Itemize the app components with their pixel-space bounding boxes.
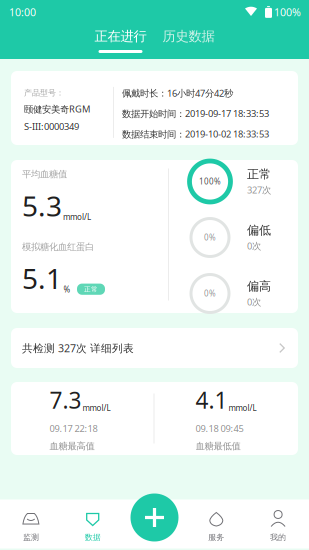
button[interactable]: 我的 xyxy=(247,499,309,548)
staticText: mmol/L xyxy=(82,402,110,413)
staticText: 10:00 xyxy=(9,5,36,19)
staticText: 0% xyxy=(204,232,216,243)
staticText: 正常 xyxy=(84,285,98,293)
staticText: 血糖最低值 xyxy=(195,440,240,452)
staticText: 4.1 xyxy=(195,385,227,415)
staticText: 100% xyxy=(274,5,301,19)
staticText: 监测 xyxy=(23,532,39,542)
staticText: 产品型号： xyxy=(24,88,64,98)
button[interactable]: 数据 xyxy=(62,499,124,548)
staticText: % xyxy=(63,284,70,295)
staticText: 共检测 327次 详细列表 xyxy=(22,341,134,355)
staticText: 颐健安美奇RGM xyxy=(24,103,90,115)
staticText: 0次 xyxy=(247,296,261,308)
staticText: 7.3 xyxy=(49,385,81,415)
staticText: 0% xyxy=(204,288,216,299)
staticText: 模拟糖化血红蛋白 xyxy=(22,241,94,253)
button[interactable]: 共检测 327次 详细列表 xyxy=(11,328,298,368)
staticText: 0次 xyxy=(247,240,261,252)
button[interactable]: 服务 xyxy=(185,499,247,548)
staticText: 服务 xyxy=(208,532,224,542)
staticText: 327次 xyxy=(247,184,271,196)
staticText: 数据结束时间：2019-10-02 18:33:53 xyxy=(122,128,269,140)
staticText: 偏低 xyxy=(247,223,271,238)
staticText: 历史数据 xyxy=(162,28,214,44)
staticText: mmol/L xyxy=(63,211,91,222)
staticText: 数据开始时间：2019-09-17 18:33:53 xyxy=(122,107,269,120)
staticText: 5.1 xyxy=(22,260,62,297)
staticText: 我的 xyxy=(270,532,286,542)
staticText: 血糖最高值 xyxy=(49,440,94,452)
staticText: 09.18 09:45 xyxy=(195,422,243,434)
staticText: mmol/L xyxy=(228,402,256,413)
staticText: S-III:0000349 xyxy=(24,120,79,132)
button[interactable]: 正在进行 xyxy=(88,24,152,59)
button[interactable]: Add xyxy=(128,491,180,543)
staticText: 佩戴时长：16小时47分42秒 xyxy=(122,87,233,99)
staticText: 09.17 22:18 xyxy=(49,422,97,434)
staticText: 偏高 xyxy=(247,279,271,294)
staticText: 正常 xyxy=(247,167,271,182)
staticText: 数据 xyxy=(85,532,101,542)
button[interactable]: 历史数据 xyxy=(156,24,220,59)
staticText: 100% xyxy=(199,176,221,187)
button[interactable]: 监测 xyxy=(0,499,62,548)
staticText: 平均血糖值 xyxy=(22,168,67,180)
staticText: 正在进行 xyxy=(94,28,146,44)
staticText: 5.3 xyxy=(22,187,62,224)
